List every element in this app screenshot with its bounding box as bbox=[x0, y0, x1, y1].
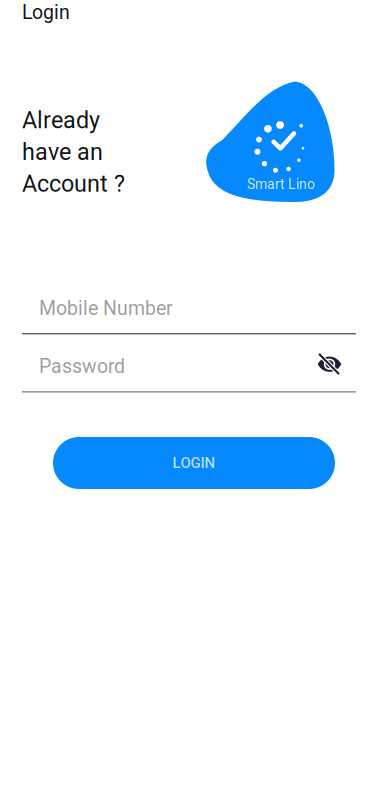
staticText: Login bbox=[22, 1, 70, 24]
staticText: Password bbox=[39, 355, 125, 378]
staticText: Smart Lino bbox=[247, 176, 315, 192]
staticText: Mobile Number bbox=[39, 297, 173, 320]
staticText: LOGIN bbox=[172, 454, 215, 472]
staticText: Account ? bbox=[22, 170, 125, 197]
button[interactable]: LOGIN bbox=[53, 437, 335, 489]
staticText: have an bbox=[22, 138, 103, 166]
button[interactable]: Show password bbox=[307, 342, 351, 386]
staticText: Already bbox=[22, 106, 100, 134]
